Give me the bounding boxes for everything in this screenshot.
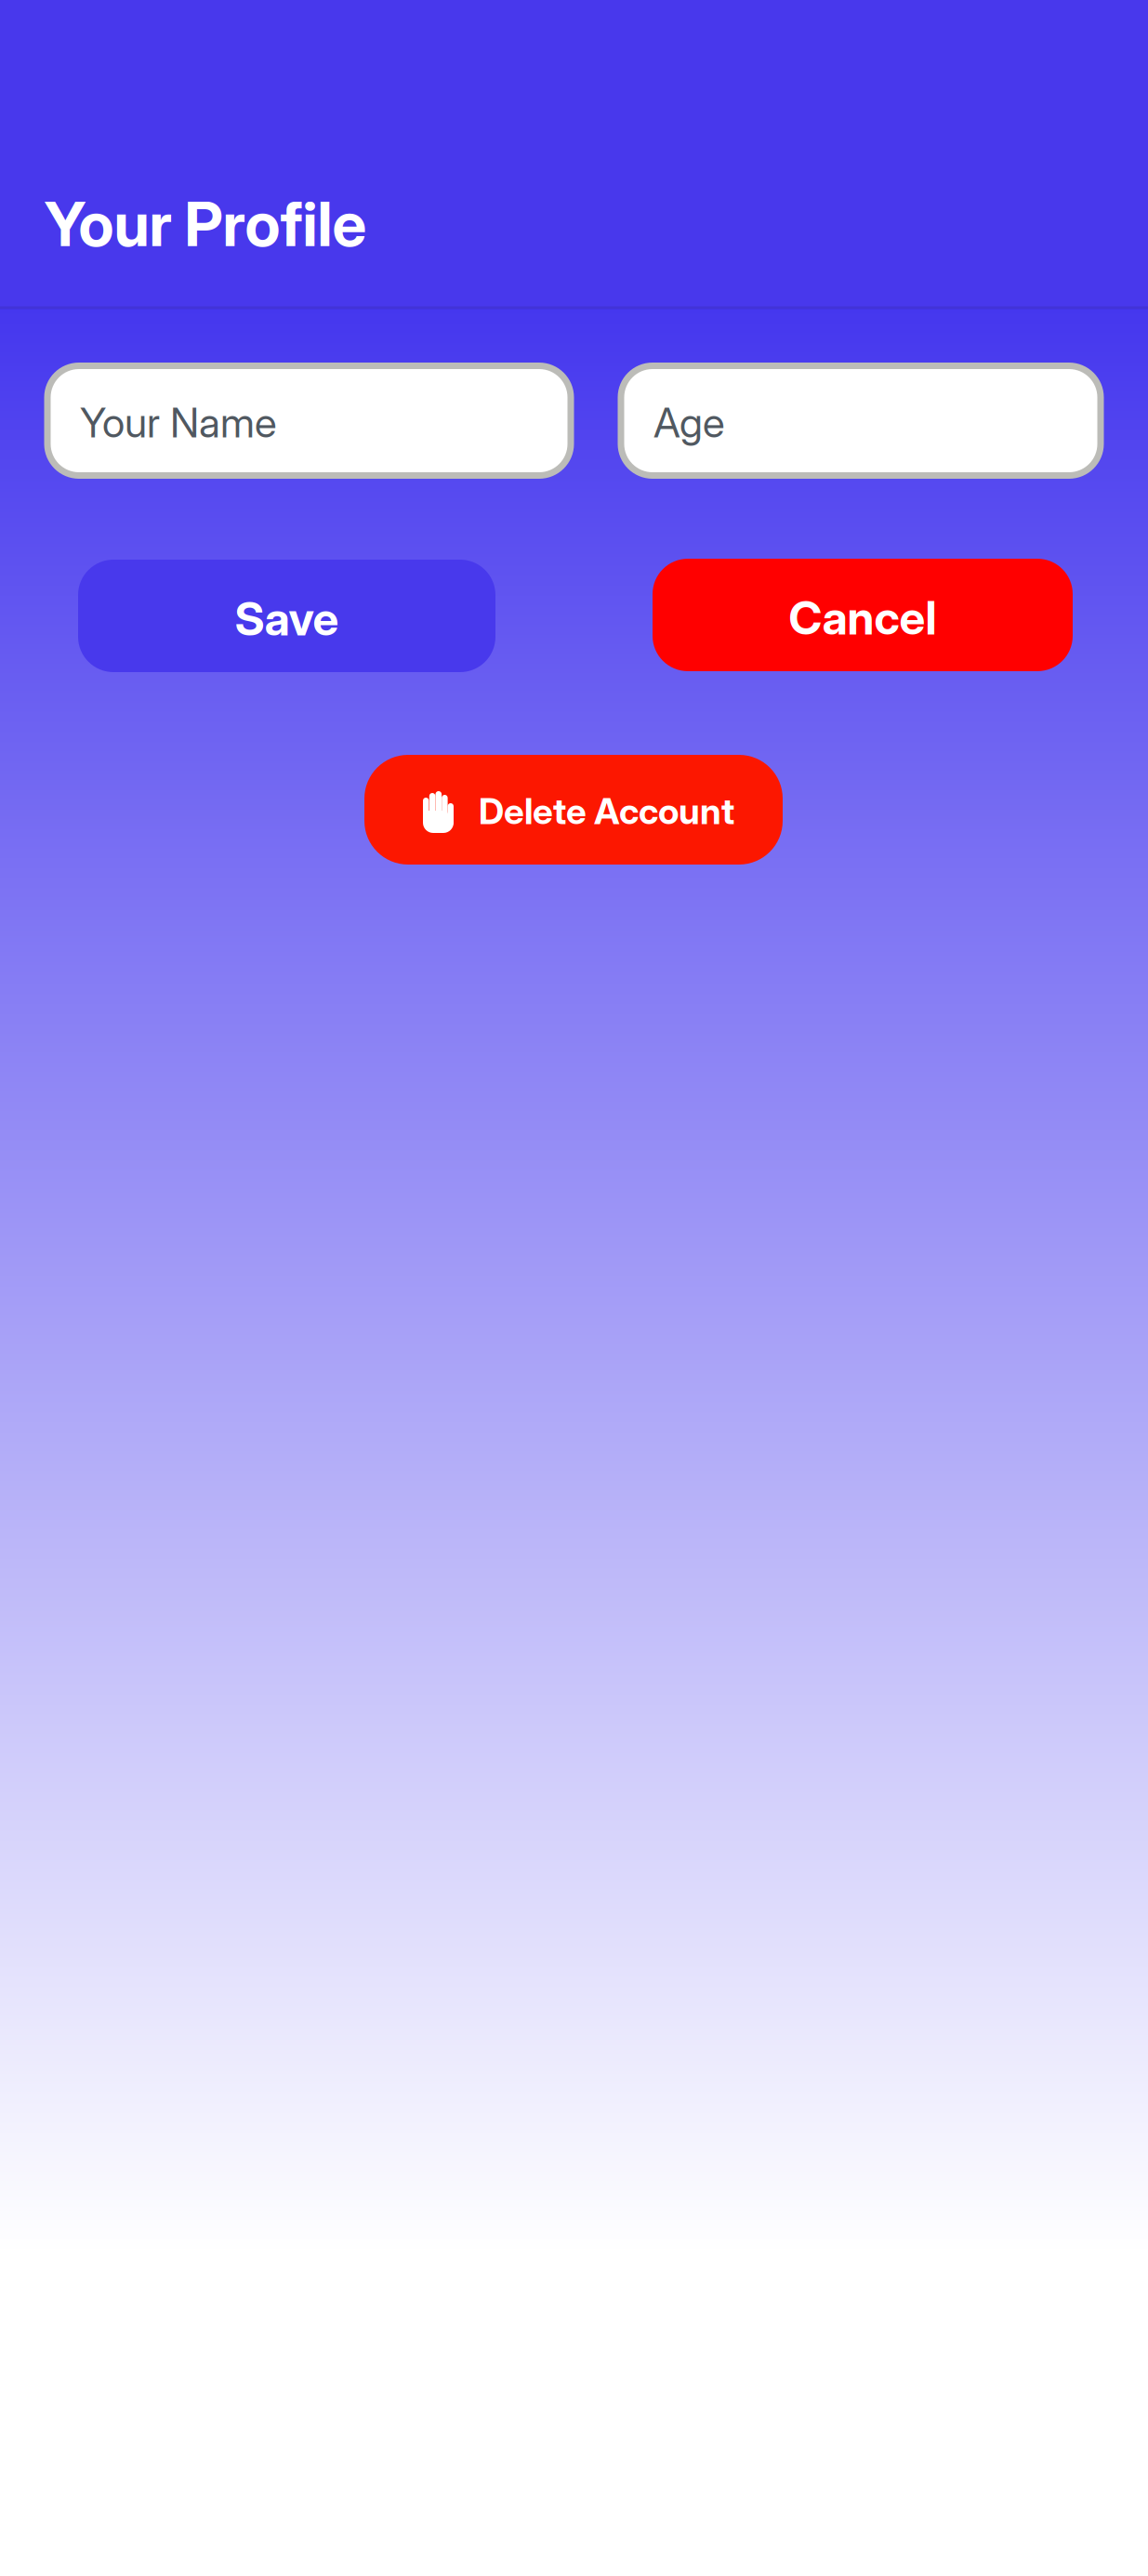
staticText: Cancel [789,590,937,646]
staticText: Your Profile [44,187,367,261]
button[interactable]: Delete Account [364,755,783,865]
staticText: Your Name [80,398,277,447]
button[interactable]: Age [621,363,1107,479]
button[interactable]: Save [78,560,495,672]
staticText: Age [653,398,725,447]
button[interactable]: Cancel [653,559,1073,671]
staticText: Delete Account [479,789,734,833]
staticText: Save [235,591,339,646]
button[interactable]: Your Name [47,363,577,479]
